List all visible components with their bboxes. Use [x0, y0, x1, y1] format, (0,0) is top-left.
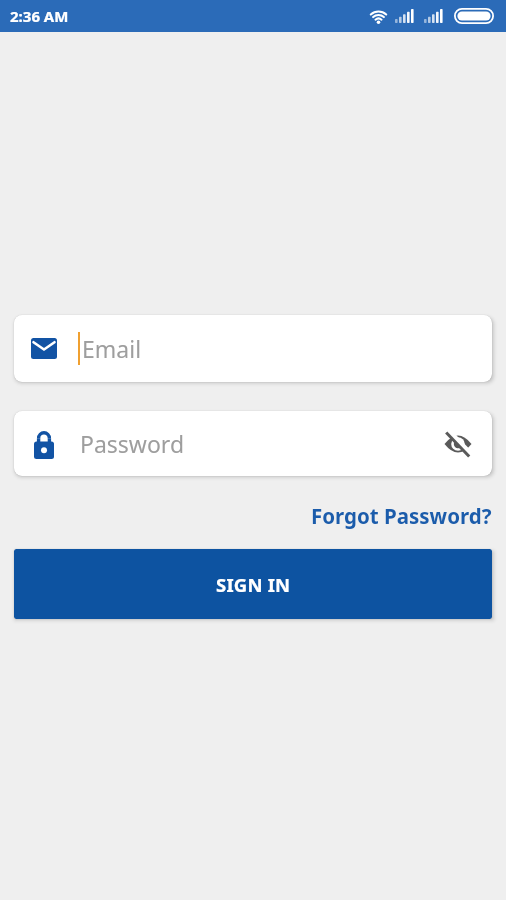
staticText: Password — [80, 428, 444, 459]
staticText: Email — [82, 333, 142, 364]
button[interactable]: Password — [14, 411, 492, 476]
staticText: SIGN IN — [216, 572, 291, 597]
button[interactable]: Email — [14, 315, 492, 382]
staticText: 2:36 AM — [10, 6, 69, 26]
button[interactable] — [444, 430, 472, 458]
button[interactable]: SIGN IN — [14, 549, 492, 619]
button[interactable]: Forgot Password? — [311, 502, 492, 530]
